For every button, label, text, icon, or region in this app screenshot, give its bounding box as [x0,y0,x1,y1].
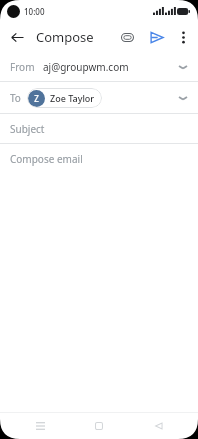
staticText: To [10,91,21,105]
staticText: Compose email [10,152,83,166]
button[interactable]: Compose email [0,144,198,174]
staticText: aj@groupwm.com [43,60,129,74]
staticText: Zoe Taylor [50,92,95,104]
button[interactable]: Back [4,24,30,50]
staticText: From [10,60,35,74]
button[interactable]: From [0,52,198,81]
button[interactable]: Recent apps [20,413,60,439]
button[interactable]: Send [144,24,170,50]
button[interactable]: Z [27,88,102,108]
staticText: 10:00 [24,6,45,17]
button[interactable]: Back [139,413,179,439]
staticText: Compose [36,28,94,46]
button[interactable]: To [0,82,198,113]
button[interactable]: Home [79,413,119,439]
button[interactable]: Subject [0,114,198,143]
button[interactable]: Attach file [114,24,140,50]
staticText: Subject [10,122,45,136]
button[interactable]: More options [172,26,194,48]
staticText: Z [34,93,39,104]
